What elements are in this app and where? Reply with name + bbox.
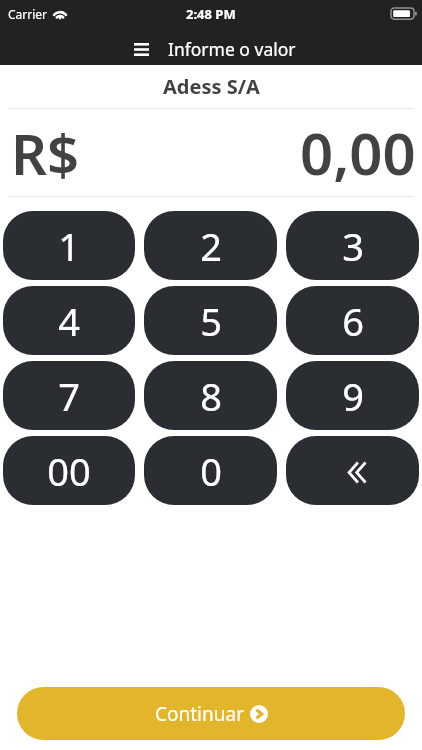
button[interactable]: 3 xyxy=(286,211,419,280)
staticText: 0 xyxy=(200,445,222,497)
button[interactable]: 00 xyxy=(3,436,135,505)
staticText: Carrier xyxy=(8,6,48,22)
button[interactable]: 0 xyxy=(144,436,277,505)
staticText: Adess S/A xyxy=(163,73,260,100)
button[interactable]: 7 xyxy=(3,361,135,430)
staticText: 2:48 PM xyxy=(186,5,236,23)
staticText: 5 xyxy=(200,295,222,347)
button[interactable]: 9 xyxy=(286,361,419,430)
button[interactable]: 1 xyxy=(3,211,135,280)
staticText: 1 xyxy=(58,220,80,272)
staticText: 8 xyxy=(200,370,222,422)
button[interactable]: 4 xyxy=(3,286,135,355)
staticText: 3 xyxy=(342,220,364,272)
staticText: 9 xyxy=(342,370,364,422)
staticText: Informe o valor xyxy=(168,37,296,61)
staticText: 00 xyxy=(47,445,91,497)
staticText: 0,00 xyxy=(300,113,416,192)
button[interactable]: 2 xyxy=(144,211,277,280)
staticText: 4 xyxy=(58,295,80,347)
button[interactable]: 6 xyxy=(286,286,419,355)
staticText: R$ xyxy=(11,115,80,191)
button[interactable]: Continuar xyxy=(17,687,405,740)
staticText: 7 xyxy=(58,370,80,422)
button[interactable]: Backspace xyxy=(286,436,419,505)
button[interactable]: Menu xyxy=(126,34,156,64)
button[interactable]: 5 xyxy=(144,286,277,355)
button[interactable]: 8 xyxy=(144,361,277,430)
staticText: 6 xyxy=(342,295,364,347)
staticText: Continuar xyxy=(155,701,244,727)
staticText: 2 xyxy=(200,220,222,272)
